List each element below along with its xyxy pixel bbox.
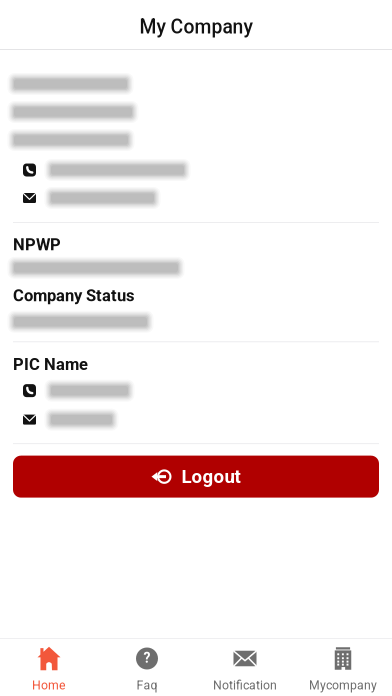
button[interactable]: Home: [0, 639, 98, 696]
staticText: Company Status: [13, 286, 134, 305]
button[interactable]: Notification: [196, 639, 294, 696]
button[interactable]: ?: [98, 639, 196, 696]
staticText: Notification: [213, 678, 277, 692]
staticText: NPWP: [13, 235, 61, 254]
button[interactable]: Mycompany: [294, 639, 392, 696]
staticText: Logout: [181, 466, 240, 488]
staticText: Home: [32, 678, 66, 692]
staticText: PIC Name: [13, 355, 88, 374]
button[interactable]: Logout: [13, 456, 379, 498]
staticText: Mycompany: [309, 678, 377, 692]
staticText: Faq: [136, 678, 157, 692]
staticText: ?: [143, 650, 150, 666]
staticText: My Company: [139, 16, 252, 38]
